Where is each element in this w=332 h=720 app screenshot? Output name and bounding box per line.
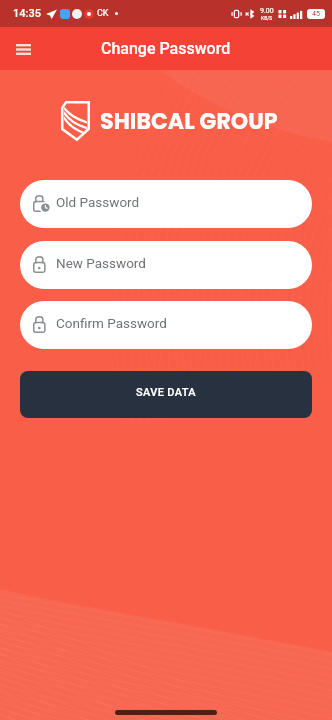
staticText: SAVE DATA (136, 386, 196, 399)
staticText: New Password (56, 255, 146, 271)
button[interactable]: New Password (20, 241, 312, 289)
staticText: CK (97, 8, 109, 19)
button[interactable]: Open navigation menu (6, 32, 40, 66)
button[interactable]: Old Password (20, 180, 312, 228)
button[interactable]: Confirm Password (20, 301, 312, 349)
button[interactable]: SAVE DATA (20, 371, 312, 418)
staticText: 45 (312, 10, 320, 18)
staticText: Confirm Password (56, 315, 167, 331)
staticText: 9.00 (260, 7, 274, 15)
staticText: 14:35 (13, 7, 41, 20)
staticText: SHIBCAL GROUP (100, 106, 278, 137)
staticText: Old Password (56, 194, 140, 210)
staticText: Change Password (101, 39, 231, 58)
staticText: KB/S (261, 15, 273, 21)
